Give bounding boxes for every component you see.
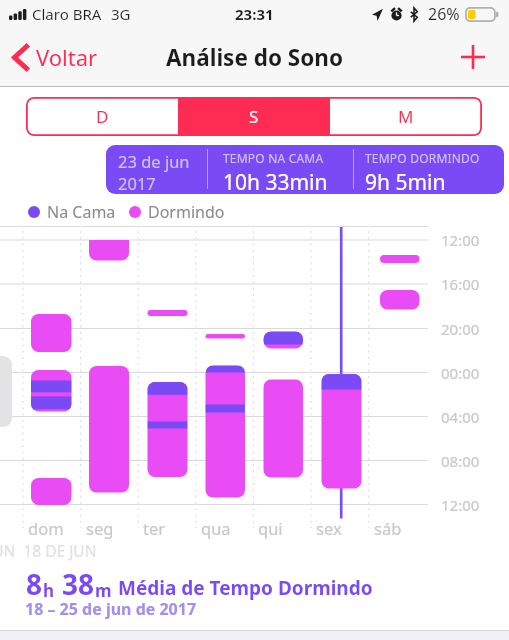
button[interactable]: M [330,97,482,136]
staticText: sáb [374,517,402,539]
staticText: 00:00 [441,363,480,383]
button[interactable]: 23 de jun [106,145,504,194]
staticText: m [95,579,112,602]
staticText: M [398,105,414,128]
staticText: dom [28,517,64,539]
staticText: S [249,105,259,128]
staticText: JUN 18 DE JUN [0,540,97,561]
staticText: 12:00 [441,495,480,515]
staticText: D [96,105,109,128]
staticText: 12:00 [441,230,480,250]
staticText: 8 [26,565,43,603]
staticText: qui [258,517,283,539]
staticText: TEMPO DORMINDO [365,150,480,166]
staticText: Análise do Sono [166,42,343,73]
staticText: 08:00 [441,451,480,471]
staticText: 23 de jun [118,150,190,172]
staticText: 2017 [118,172,156,194]
staticText: 18 – 25 de jun de 2017 [25,598,197,620]
staticText: 3G [111,4,131,24]
staticText: Claro BRA [32,4,102,24]
staticText: 26% [428,3,460,25]
staticText: TEMPO NA CAMA [223,150,324,166]
staticText: 20:00 [441,319,480,339]
staticText: 23:31 [235,4,274,24]
button[interactable]: S [178,97,330,136]
staticText: 04:00 [441,407,480,427]
staticText: qua [201,517,231,539]
staticText: Voltar [36,42,98,72]
staticText: Média de Tempo Dormindo [118,575,373,601]
staticText: Na Cama [47,201,116,223]
staticText: sex [316,517,342,539]
staticText: h [43,579,55,602]
staticText: 38 [62,565,95,603]
staticText: Dormindo [148,201,225,223]
staticText: 10h 33min [223,168,328,194]
button[interactable]: Adicionar [457,41,489,73]
staticText: 9h 5min [365,168,446,194]
button[interactable]: D [26,97,178,136]
staticText: ter [143,517,166,539]
staticText: seg [86,517,114,539]
button[interactable]: Voltar [8,36,102,78]
staticText: 16:00 [441,274,480,294]
